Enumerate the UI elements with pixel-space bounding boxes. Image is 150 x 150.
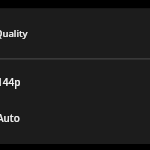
button[interactable]: Auto: [0, 100, 150, 136]
staticText: Auto: [0, 111, 20, 125]
button[interactable]: 144p: [0, 64, 150, 100]
staticText: 144p: [0, 75, 21, 89]
staticText: Quality: [0, 27, 28, 40]
